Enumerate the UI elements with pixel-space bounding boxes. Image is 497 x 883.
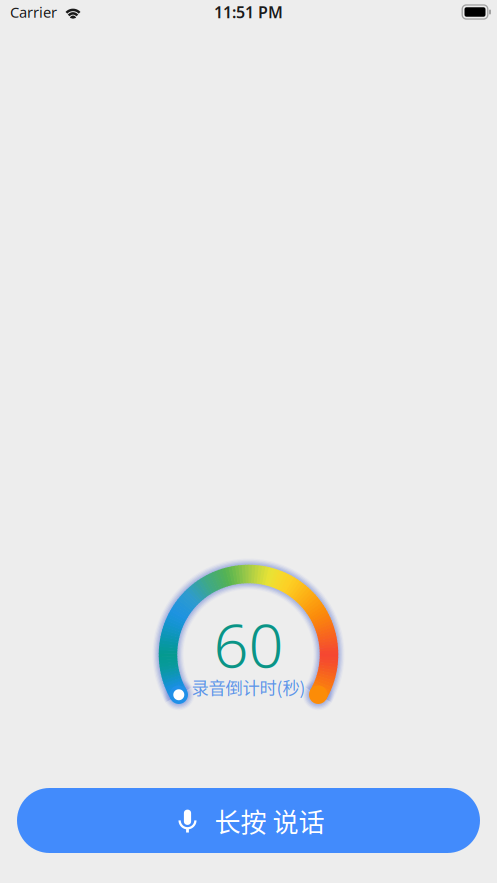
staticText: 60 [213,603,283,685]
staticText: 11:51 PM [214,1,283,23]
staticText: 长按 说话 [214,802,324,839]
staticText: 录音倒计时(秒) [191,674,305,700]
staticText: Carrier [10,2,57,22]
button[interactable]: 长按 说话 [17,788,480,853]
